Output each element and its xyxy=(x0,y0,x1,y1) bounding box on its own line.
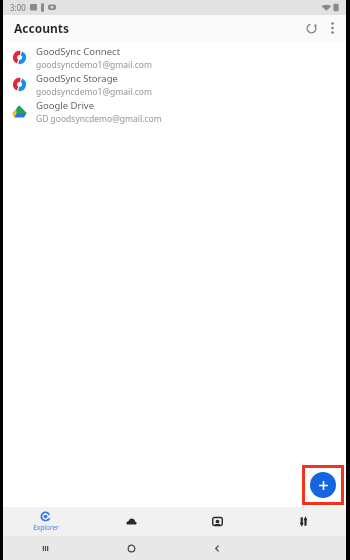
button[interactable]: Explorer xyxy=(3,507,88,536)
button[interactable]: Recent apps xyxy=(3,536,88,560)
button[interactable]: GoodSync Storage xyxy=(3,71,346,98)
button[interactable]: Navigation tab xyxy=(174,507,260,536)
staticText: 3:00 xyxy=(10,2,26,13)
button[interactable]: Google Drive xyxy=(3,98,346,125)
button[interactable]: Add account xyxy=(310,472,336,498)
button[interactable]: Back xyxy=(174,536,260,560)
button[interactable]: More options xyxy=(322,18,342,38)
button[interactable]: Navigation tab xyxy=(260,507,346,536)
staticText: GoodSync Storage xyxy=(36,72,118,85)
staticText: goodsyncdemo1@gmail.com xyxy=(36,59,152,71)
staticText: GD goodsyncdemo@gmail.com xyxy=(36,113,162,125)
staticText: Explorer xyxy=(33,523,59,532)
staticText: Google Drive xyxy=(36,99,95,112)
button[interactable]: GoodSync Connect xyxy=(3,44,346,71)
staticText: goodsyncdemo1@gmail.com xyxy=(36,86,152,98)
button[interactable]: Refresh xyxy=(300,17,322,39)
staticText: GoodSync Connect xyxy=(36,45,121,58)
staticText: Accounts xyxy=(14,20,70,36)
button[interactable]: Home xyxy=(88,536,174,560)
button[interactable]: Navigation tab xyxy=(88,507,174,536)
